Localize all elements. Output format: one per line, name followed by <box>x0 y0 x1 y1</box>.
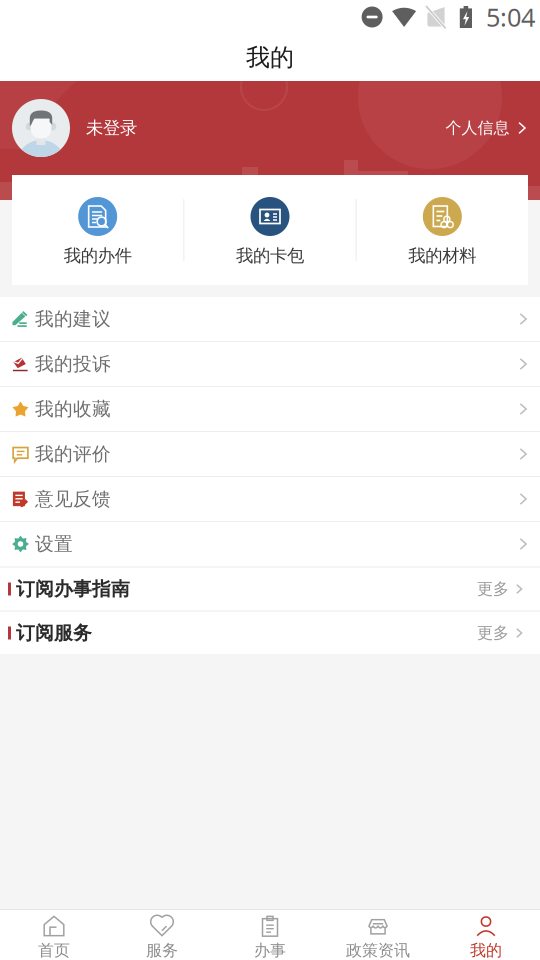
staticText: 5:04 <box>486 0 535 34</box>
button[interactable]: 政策资讯 <box>324 908 432 960</box>
button[interactable]: 个人信息 <box>445 108 528 148</box>
staticText: 办事 <box>254 941 286 960</box>
staticText: 我的办件 <box>64 245 132 266</box>
staticText: 我的收藏 <box>35 397 111 420</box>
staticText: 设置 <box>35 532 73 555</box>
staticText: 未登录 <box>86 117 137 139</box>
staticText: 我的投诉 <box>35 352 111 375</box>
button[interactable]: 我的建议 <box>0 297 540 341</box>
staticText: 服务 <box>146 941 178 960</box>
button[interactable]: 意见反馈 <box>0 477 540 521</box>
button[interactable]: 办事 <box>216 908 324 960</box>
staticText: 我的评价 <box>35 442 111 465</box>
staticText: 首页 <box>38 941 70 960</box>
button[interactable]: 订阅服务 <box>0 612 540 654</box>
button[interactable]: 我的评价 <box>0 432 540 476</box>
button[interactable]: 我的材料 <box>357 175 528 285</box>
staticText: 订阅服务 <box>16 621 92 644</box>
button[interactable]: 设置 <box>0 522 540 566</box>
staticText: 意见反馈 <box>35 487 111 510</box>
button[interactable]: 我的投诉 <box>0 342 540 386</box>
staticText: 我的 <box>470 941 502 960</box>
button[interactable]: 我的卡包 <box>184 175 356 285</box>
staticText: 我的材料 <box>408 245 476 266</box>
staticText: 我的卡包 <box>236 245 304 266</box>
button[interactable]: 订阅办事指南 <box>0 568 540 610</box>
staticText: 更多 <box>477 579 509 599</box>
button[interactable]: 服务 <box>108 908 216 960</box>
staticText: 个人信息 <box>445 118 509 138</box>
button[interactable]: 我的收藏 <box>0 387 540 431</box>
button[interactable]: 我的 <box>432 908 540 960</box>
staticText: 更多 <box>477 623 509 643</box>
button[interactable]: 首页 <box>0 908 108 960</box>
staticText: 政策资讯 <box>346 941 410 960</box>
staticText: 订阅办事指南 <box>16 577 130 600</box>
button[interactable]: 我的办件 <box>12 175 183 285</box>
staticText: 我的 <box>246 43 294 72</box>
staticText: 我的建议 <box>35 307 111 330</box>
